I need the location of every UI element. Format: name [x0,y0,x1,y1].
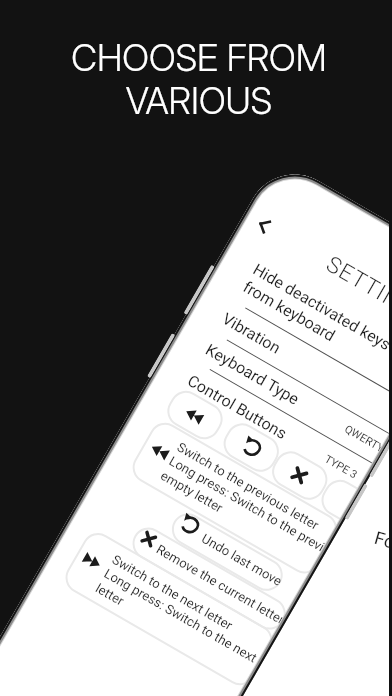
staticText: QWERTY [303,400,386,455]
staticText: empty letter [158,468,226,516]
button[interactable]: Undo last move [239,433,266,460]
button[interactable] [60,527,278,691]
button[interactable] [161,385,228,445]
button[interactable]: Remove the current letter [289,465,310,486]
button[interactable]: Previous letter [146,438,172,464]
staticText: Long press: Switch to the previous [167,453,331,557]
staticText: Switch to the next letter [110,552,236,633]
staticText: Font [372,527,392,557]
button[interactable]: Previous letter [180,402,206,428]
staticText: Long press: Switch to the next empty [102,566,266,669]
button[interactable] [166,507,288,597]
staticText: Keyboard Type [202,340,303,409]
button[interactable]: Back [249,212,279,242]
staticText: Control Buttons [184,371,291,444]
button[interactable] [218,417,285,477]
staticText: TYPE 3 [277,426,359,481]
staticText: letter [93,580,127,608]
staticText: CHOOSE FROM VARIOUS [3,36,392,123]
button[interactable]: Next letter [79,548,105,574]
button[interactable] [127,417,343,579]
staticText: Vibration [219,309,284,358]
button[interactable] [316,474,362,522]
button[interactable] [266,445,333,505]
button[interactable] [127,522,292,635]
staticText: SETTINGS [322,250,392,329]
staticText: Undo last move [199,531,284,589]
button[interactable]: Undo last move [177,510,204,538]
staticText: Switch to the previous letter [175,439,321,533]
button[interactable]: Remove the current letter [139,529,158,549]
staticText: Hide deactivated keys from keyboard [240,260,392,372]
staticText: Remove the current letter [154,542,288,628]
